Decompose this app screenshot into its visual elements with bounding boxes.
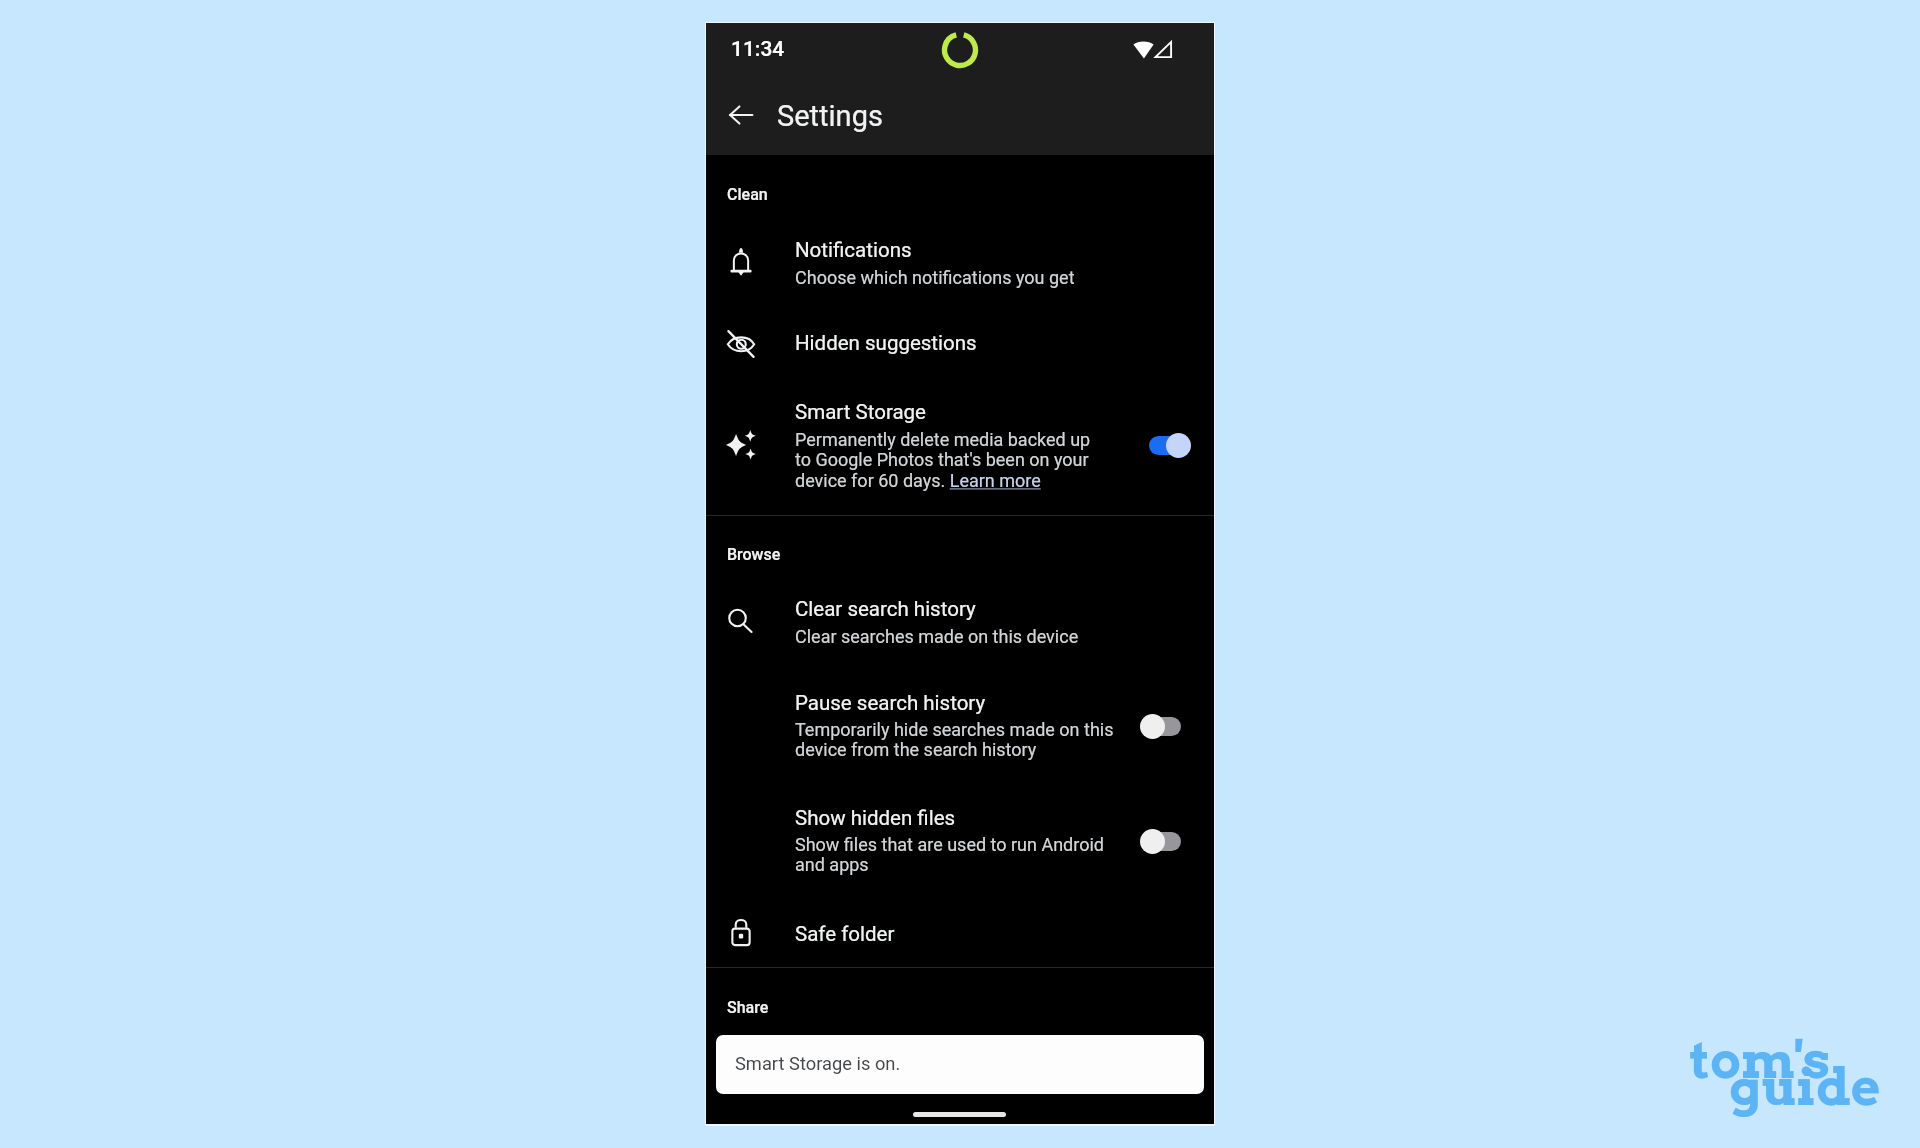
staticText: Show hidden files xyxy=(795,806,956,830)
staticText: Settings xyxy=(777,99,883,133)
button[interactable]: Show hidden files, off xyxy=(1140,829,1182,854)
staticText: Share xyxy=(727,998,769,1017)
staticText: Pause search history xyxy=(795,691,986,715)
staticText: Clear searches made on this device xyxy=(795,626,1079,647)
button[interactable]: Smart Storage xyxy=(706,390,1214,495)
staticText: Smart Storage is on. xyxy=(735,1053,901,1074)
staticText: Clean xyxy=(727,185,768,204)
staticText: Notifications xyxy=(795,238,912,262)
staticText: Show files that are used to run Android … xyxy=(795,834,1104,876)
staticText: Clear search history xyxy=(795,597,976,621)
staticText: Smart Storage xyxy=(795,400,926,424)
button[interactable]: Notifications xyxy=(706,222,1214,294)
staticText: tom's xyxy=(1690,1029,1831,1091)
staticText: Temporarily hide searches made on this d… xyxy=(795,719,1114,761)
button[interactable]: Show hidden files xyxy=(706,795,1214,879)
staticText: Permanently delete media backed up to Go… xyxy=(795,429,1091,492)
button[interactable]: Hidden suggestions xyxy=(706,310,1214,376)
button[interactable]: Smart Storage is on. xyxy=(716,1035,1204,1094)
button[interactable]: Pause search history, off xyxy=(1140,714,1182,739)
button[interactable]: Pause search history xyxy=(706,680,1214,764)
staticText: 11:34 xyxy=(731,37,785,62)
button[interactable]: Safe folder xyxy=(706,900,1214,964)
staticText: guide xyxy=(1729,1056,1881,1118)
button[interactable]: Back xyxy=(724,98,758,132)
staticText: Hidden suggestions xyxy=(795,331,977,355)
button[interactable]: Smart Storage, on xyxy=(1149,433,1191,458)
staticText: Safe folder xyxy=(795,922,895,946)
staticText: Browse xyxy=(727,545,781,564)
staticText: Choose which notifications you get xyxy=(795,267,1075,288)
button[interactable]: Clear search history xyxy=(706,582,1214,654)
